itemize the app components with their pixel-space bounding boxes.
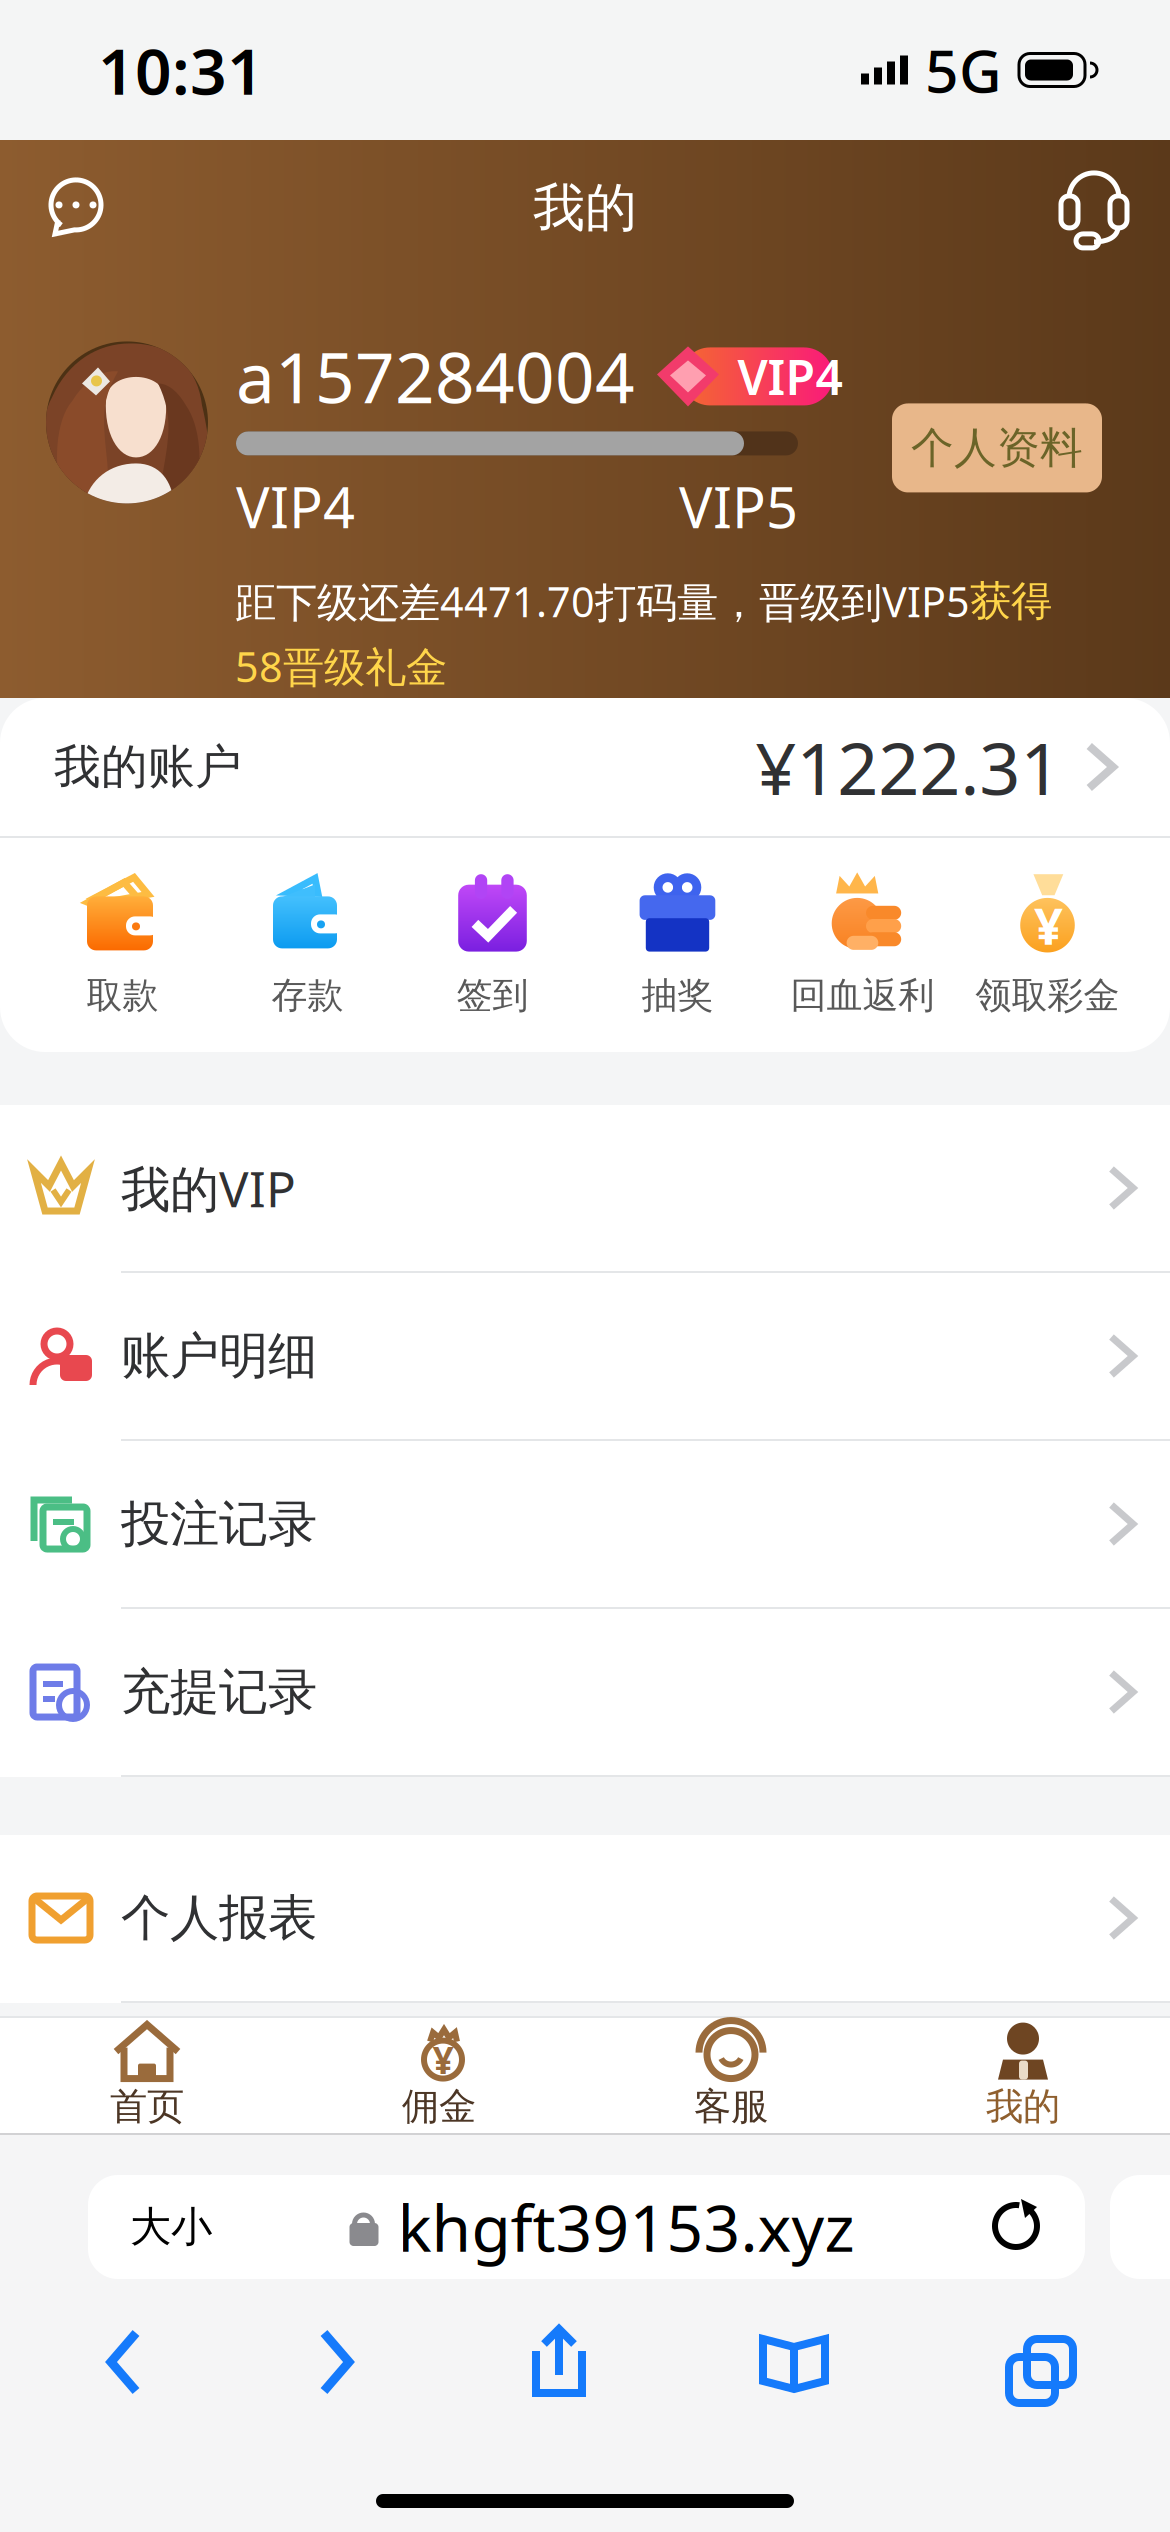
button[interactable]: 消息	[42, 176, 110, 240]
staticText: khgft39153.xyz	[397, 2184, 854, 2269]
button[interactable]: 充提记录	[0, 1609, 1170, 1777]
staticText: 佣金	[402, 2084, 476, 2129]
button[interactable]: 分享	[526, 2325, 592, 2399]
staticText: a157284004	[236, 330, 635, 422]
staticText: 10:31	[98, 27, 264, 112]
button[interactable]: 个人资料	[892, 403, 1102, 492]
staticText: 我的VIP	[121, 1155, 296, 1221]
staticText: 大小	[130, 2202, 212, 2252]
button[interactable]: 标签页	[998, 2328, 1066, 2396]
staticText: 抽奖	[641, 973, 713, 1018]
button[interactable]: 取款	[30, 856, 215, 1034]
button[interactable]: 个人报表	[0, 1835, 1170, 2003]
button[interactable]: 客服	[1060, 167, 1128, 249]
staticText: ¥1222.31	[755, 719, 1061, 815]
staticText: 获得	[970, 576, 1052, 627]
staticText: VIP5	[679, 469, 798, 544]
staticText: 我的	[986, 2084, 1060, 2129]
staticText: 个人资料	[911, 422, 1083, 474]
button[interactable]: 签到	[400, 856, 585, 1034]
staticText: 签到	[456, 973, 528, 1018]
button[interactable]: ¥	[293, 2017, 585, 2134]
button[interactable]: 书签	[759, 2327, 831, 2397]
button[interactable]: 我的	[877, 2017, 1169, 2134]
button[interactable]: 首页	[1, 2017, 293, 2134]
button[interactable]: 我的账户	[0, 698, 1170, 836]
button[interactable]: 抽奖	[585, 856, 770, 1034]
staticText: ¥	[1034, 891, 1063, 959]
staticText: VIP4	[236, 469, 355, 544]
button[interactable]: 前进	[315, 2329, 359, 2395]
staticText: 首页	[110, 2084, 184, 2129]
button[interactable]: 后退	[104, 2329, 148, 2395]
button[interactable]: 投注记录	[0, 1441, 1170, 1609]
staticText: 投注记录	[121, 1494, 317, 1554]
button[interactable]: 回血返利	[770, 856, 955, 1034]
staticText: 58晋级礼金	[235, 639, 447, 694]
button[interactable]: 存款	[215, 856, 400, 1034]
staticText: 客服	[694, 2084, 768, 2129]
staticText: ¥	[432, 2035, 453, 2084]
button[interactable]: 账户明细	[0, 1273, 1170, 1441]
staticText: 存款	[271, 973, 343, 1018]
staticText: 回血返利	[790, 973, 934, 1018]
button[interactable]: ¥	[955, 856, 1140, 1034]
button[interactable]: 客服	[585, 2017, 877, 2134]
staticText: 领取彩金	[975, 973, 1119, 1018]
staticText: 个人报表	[121, 1888, 317, 1948]
staticText: 取款	[86, 973, 158, 1018]
staticText: 账户明细	[121, 1326, 317, 1386]
staticText: 我的账户	[54, 738, 242, 796]
staticText: 我的	[533, 176, 637, 240]
staticText: 充提记录	[121, 1662, 317, 1722]
staticText: 距下级还差4471.70打码量，晋级到VIP5	[235, 574, 970, 629]
button[interactable]: 我的VIP	[0, 1105, 1170, 1273]
staticText: 5G	[925, 31, 1002, 109]
staticText: VIP4	[737, 345, 842, 408]
